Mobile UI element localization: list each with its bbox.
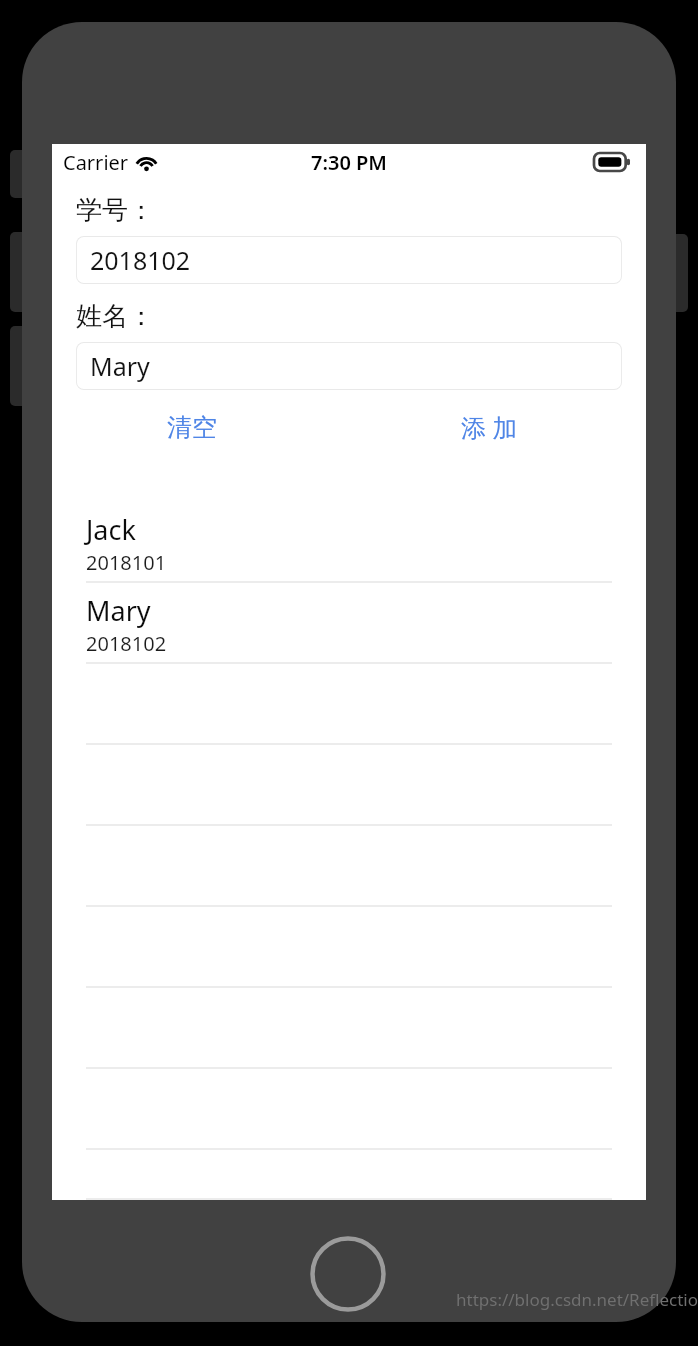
staticText: 学号： [76,194,154,227]
staticText: Jack [86,511,136,548]
button[interactable]: Mary [76,342,622,390]
staticText: 2018102 [90,243,191,277]
other: Power [668,234,688,312]
staticText: 2018102 [86,630,167,657]
staticText: 7:30 PM [311,149,387,176]
button[interactable]: 2018102 [76,236,622,284]
button[interactable]: 清空 [52,404,349,450]
other: Silent switch [10,150,30,198]
button[interactable]: 添 加 [349,404,646,450]
staticText: Mary [86,592,151,629]
staticText: 添 加 [461,410,518,444]
other: Home [310,1236,386,1312]
staticText: Mary [90,349,150,383]
button[interactable]: Jack [86,502,612,583]
staticText: 姓名： [76,300,154,333]
staticText: 清空 [167,412,217,443]
staticText: 2018101 [86,549,167,576]
button[interactable]: Mary [86,583,612,664]
other: Volume down [10,326,30,406]
staticText: Carrier [63,149,129,176]
staticText: https://blog.csdn.net/Reflection_ [456,1288,698,1311]
other: Volume up [10,232,30,312]
